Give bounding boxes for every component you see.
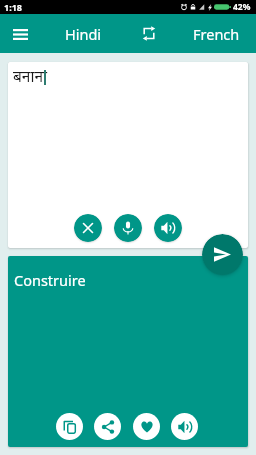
staticText: 42% [233, 1, 251, 13]
button[interactable]: Share [94, 413, 121, 440]
button[interactable]: Clear [74, 214, 102, 242]
button[interactable]: Translate [202, 234, 243, 275]
button[interactable]: Speak source [154, 214, 182, 242]
button[interactable]: Construire [8, 256, 248, 447]
button[interactable]: Menu [4, 18, 36, 50]
button[interactable]: Favorite [133, 413, 160, 440]
staticText: 1:18 [4, 1, 22, 13]
button[interactable]: Voice input [114, 214, 142, 242]
staticText: Hindi [65, 24, 102, 44]
button[interactable]: Hindi [40, 14, 126, 53]
staticText: Construire [14, 270, 86, 290]
staticText: बनाना [13, 65, 48, 86]
button[interactable]: Swap languages [136, 14, 161, 53]
button[interactable]: Copy [56, 413, 83, 440]
button[interactable]: French [175, 14, 256, 53]
button[interactable]: Speak translation [171, 413, 198, 440]
staticText: French [193, 24, 240, 44]
button[interactable]: Text to translate [8, 62, 248, 248]
